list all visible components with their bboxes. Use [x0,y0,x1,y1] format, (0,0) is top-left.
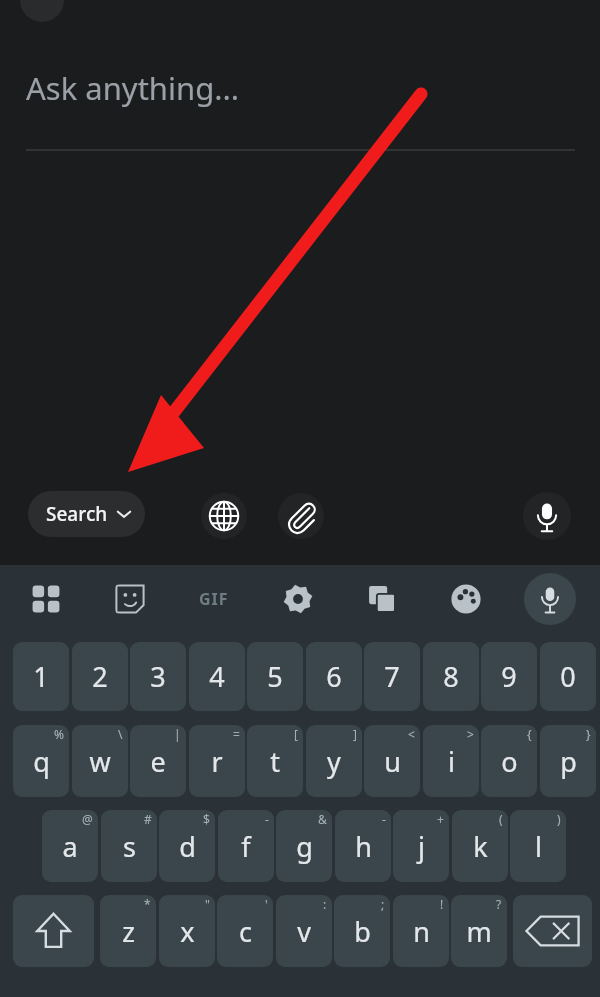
button[interactable]: Attach file [278,493,324,539]
staticText: = [233,726,240,742]
staticText: p [560,743,577,780]
button[interactable]: y [306,725,362,797]
button[interactable]: 3 [130,642,186,711]
staticText: z [122,913,135,950]
staticText: h [355,828,372,865]
button[interactable]: x [159,895,215,967]
staticText: : [323,896,327,912]
button[interactable]: 4 [189,642,245,711]
button[interactable]: Backspace [513,895,592,967]
button[interactable]: q [13,725,69,797]
button[interactable]: Shift [13,895,94,967]
button[interactable]: n [393,895,449,967]
staticText: + [437,811,444,827]
button[interactable]: Voice typing [524,573,576,625]
staticText: ; [381,896,385,912]
staticText: Ask anything... [26,67,240,109]
button[interactable]: t [247,725,303,797]
button[interactable]: 7 [364,642,420,711]
button[interactable]: d [159,810,215,882]
staticText: r [211,743,223,780]
staticText: * [144,896,151,912]
staticText: 1 [33,658,49,695]
staticText: u [384,743,401,780]
button[interactable]: p [540,725,596,797]
button[interactable]: o [481,725,537,797]
button[interactable]: Voice input [523,492,571,540]
staticText: s [123,828,136,865]
staticText: d [179,828,196,865]
staticText: 5 [267,658,283,695]
staticText: % [54,726,64,742]
staticText: ! [440,896,444,912]
staticText: $ [203,811,210,827]
staticText: 2 [92,658,108,695]
staticText: j [418,828,425,865]
button[interactable]: a [42,810,98,882]
staticText: < [408,726,415,742]
button[interactable]: l [510,810,566,882]
button[interactable]: 5 [247,642,303,711]
button[interactable]: h [335,810,391,882]
staticText: - [382,811,386,827]
button[interactable]: Search [28,491,145,537]
button[interactable]: m [451,895,507,967]
staticText: y [327,743,341,780]
button[interactable]: e [130,725,186,797]
button[interactable]: b [334,895,390,967]
button[interactable]: v [276,895,332,967]
staticText: t [270,743,280,780]
button[interactable]: Settings [264,565,332,633]
staticText: " [205,896,210,912]
button[interactable]: Translate [348,565,416,633]
staticText: l [535,828,542,865]
button[interactable]: f [218,810,274,882]
staticText: { [527,726,532,742]
button[interactable]: 0 [540,642,596,711]
button[interactable]: c [217,895,273,967]
staticText: | [174,726,181,742]
button[interactable]: r [189,725,245,797]
button[interactable]: z [100,895,156,967]
staticText: [ [294,726,298,742]
staticText: k [473,828,488,865]
staticText: 6 [326,658,342,695]
button[interactable]: Stickers [96,565,164,633]
staticText: a [62,828,78,865]
staticText: @ [82,811,93,827]
staticText: e [150,743,166,780]
staticText: # [144,811,152,827]
staticText: 9 [501,658,517,695]
staticText: ? [496,896,502,912]
staticText: c [239,913,252,950]
staticText: i [448,743,455,780]
staticText: q [33,743,50,780]
staticText: 8 [443,658,459,695]
button[interactable]: u [364,725,420,797]
button[interactable]: 2 [72,642,128,711]
button[interactable]: k [452,810,508,882]
staticText: x [180,913,195,950]
staticText: w [89,743,111,780]
staticText: g [296,828,313,865]
button[interactable]: Web search [201,493,247,539]
button[interactable]: Apps [12,565,80,633]
staticText: & [318,811,327,827]
button[interactable]: s [101,810,157,882]
staticText: 0 [560,658,576,695]
button[interactable]: GIF [180,565,248,633]
staticText: v [297,913,311,950]
button[interactable]: Theme [432,565,500,633]
staticText: n [413,913,430,950]
button[interactable]: w [72,725,128,797]
button[interactable]: j [393,810,449,882]
button[interactable]: g [276,810,332,882]
button[interactable]: i [423,725,479,797]
staticText: \ [118,726,123,742]
button[interactable]: 8 [423,642,479,711]
staticText: GIF [199,588,229,610]
button[interactable]: 6 [306,642,362,711]
button[interactable]: 1 [13,642,69,711]
staticText: f [241,828,251,865]
button[interactable]: 9 [481,642,537,711]
